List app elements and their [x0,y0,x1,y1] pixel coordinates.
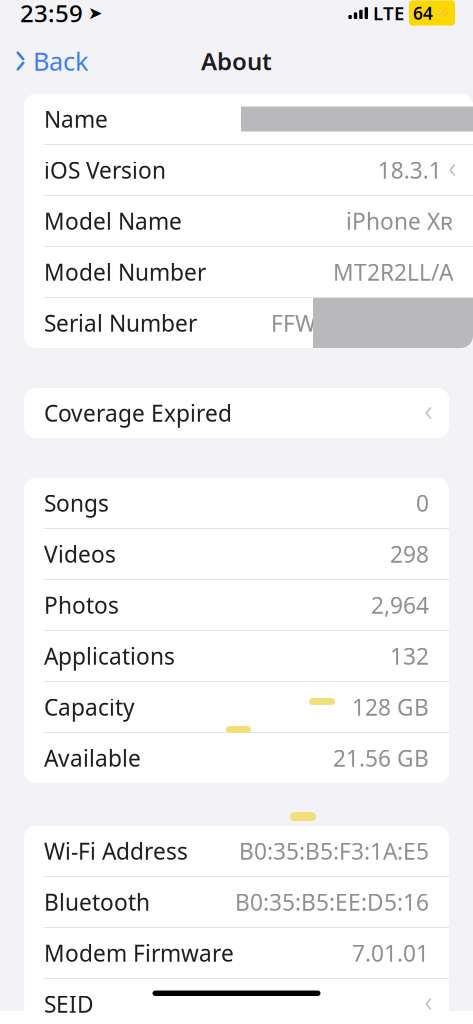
staticText: Applications [44,641,175,671]
staticText: Available [44,743,141,773]
staticText: Capacity [44,692,135,722]
staticText: Wi-Fi Address [44,836,188,866]
staticText: SEID [44,989,94,1019]
staticText: 7.01.01 [352,938,429,968]
staticText: Modem Firmware [44,938,234,968]
staticText: About [201,45,272,77]
button[interactable]: SEID [24,979,449,1024]
staticText: 298 [390,539,429,569]
button[interactable]: Applications [24,631,449,681]
button[interactable]: Wi-Fi Address [24,826,449,876]
staticText: Serial Number [44,308,197,338]
staticText: ➤ [88,3,103,23]
button[interactable]: Bluetooth [24,877,449,927]
staticText: B0:35:B5:EE:D5:16 [235,887,429,917]
staticText: 18.3.1 [378,155,442,185]
staticText: 0 [416,488,429,518]
button[interactable]: Capacity [24,682,449,732]
staticText: 23:59 [20,0,83,29]
staticText: Back [33,44,89,78]
staticText: Bluetooth [44,887,150,917]
staticText: ⚡ [434,5,451,21]
staticText: Model Name [44,206,182,236]
button[interactable]: Modem Firmware [24,928,449,978]
button[interactable]: Photos [24,580,449,630]
staticText: iPhone Xʀ [346,206,453,236]
staticText: FFW [271,308,316,338]
staticText: Photos [44,590,119,620]
button[interactable]: Available [24,733,449,783]
staticText: 128 GB [352,692,429,722]
staticText: Songs [44,488,109,518]
button[interactable]: Videos [24,529,449,579]
staticText: 64 [413,1,433,24]
staticText: 132 [390,641,429,671]
staticText: 21.56 GB [333,743,429,773]
staticText: Videos [44,539,116,569]
button[interactable]: Coverage Expired [24,388,449,438]
staticText: MT2R2LL/A [333,257,453,287]
button[interactable]: Songs [24,478,449,528]
button[interactable]: Model Number [24,247,473,297]
staticText: Coverage Expired [44,398,232,428]
staticText: Name [44,104,108,134]
staticText: B0:35:B5:F3:1A:E5 [239,836,429,866]
staticText: Model Number [44,257,206,287]
staticText: LTE [373,1,404,25]
button[interactable]: Model Name [24,196,473,246]
button[interactable]: Back [0,39,99,83]
staticText: iOS Version [44,155,166,185]
staticText: 2,964 [371,590,429,620]
button[interactable]: iOS Version [24,145,473,195]
